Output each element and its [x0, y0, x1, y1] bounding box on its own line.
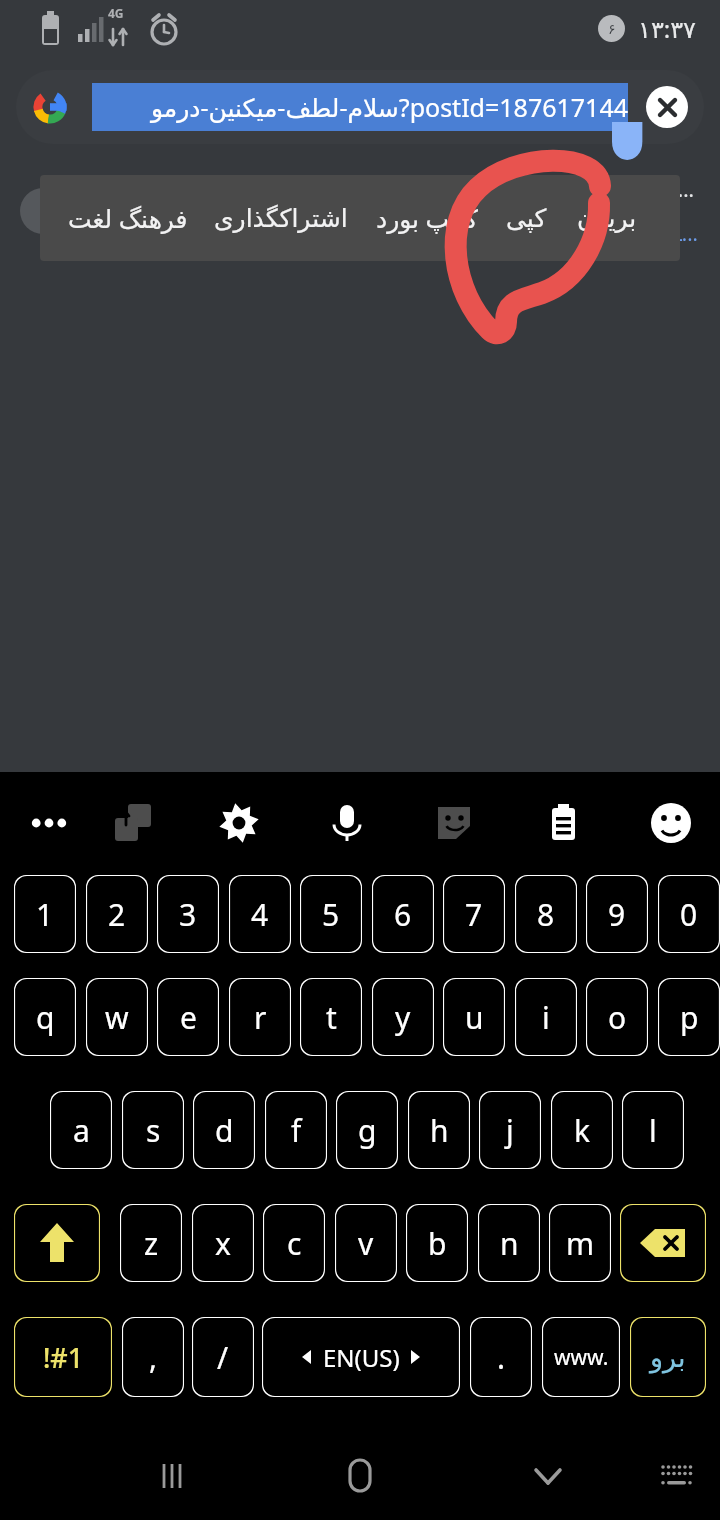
- staticText: n: [500, 1223, 519, 1264]
- button[interactable]: بریدن: [577, 175, 637, 261]
- button[interactable]: 7: [443, 875, 505, 953]
- staticText: .: [497, 1337, 506, 1378]
- staticText: www.: [554, 1343, 609, 1372]
- staticText: h: [430, 1110, 449, 1151]
- button[interactable]: t: [300, 978, 362, 1056]
- button[interactable]: 9: [586, 875, 648, 953]
- button[interactable]: Backspace: [620, 1204, 706, 1282]
- button[interactable]: 4: [229, 875, 291, 953]
- button[interactable]: Hide keyboard: [518, 1446, 578, 1506]
- staticText: ۶: [608, 21, 616, 37]
- staticText: y: [395, 997, 411, 1038]
- staticText: z: [144, 1223, 159, 1264]
- button[interactable]: Emoji: [640, 792, 702, 854]
- staticText: ,: [149, 1337, 158, 1378]
- staticText: 5: [322, 894, 340, 935]
- staticText: ـ...: [676, 220, 698, 247]
- button[interactable]: i: [515, 978, 577, 1056]
- staticText: p: [680, 997, 699, 1038]
- staticText: v: [358, 1223, 374, 1264]
- button[interactable]: کلیپ بورد: [376, 175, 478, 261]
- staticText: d: [215, 1110, 234, 1151]
- button[interactable]: Space EN(US): [262, 1317, 460, 1397]
- button[interactable]: ,: [122, 1317, 184, 1397]
- staticText: کلیپ بورد: [376, 201, 478, 235]
- button[interactable]: u: [443, 978, 505, 1056]
- staticText: /: [217, 1337, 229, 1378]
- button[interactable]: 3: [157, 875, 219, 953]
- button[interactable]: k: [551, 1091, 613, 1169]
- button[interactable]: !#1: [14, 1317, 112, 1397]
- button[interactable]: Settings: [208, 792, 270, 854]
- staticText: EN(US): [323, 1341, 400, 1374]
- staticText: برو: [650, 1342, 686, 1373]
- staticText: 4G: [108, 5, 124, 21]
- button[interactable]: a: [50, 1091, 112, 1169]
- button[interactable]: o: [586, 978, 648, 1056]
- staticText: m: [566, 1223, 595, 1264]
- staticText: 1: [36, 894, 54, 935]
- staticText: t: [326, 997, 337, 1038]
- button[interactable]: e: [157, 978, 219, 1056]
- button[interactable]: y: [372, 978, 434, 1056]
- button[interactable]: 8: [515, 875, 577, 953]
- button[interactable]: Stickers: [424, 792, 486, 854]
- button[interactable]: www.: [542, 1317, 620, 1397]
- button[interactable]: 5: [300, 875, 362, 953]
- button[interactable]: c: [263, 1204, 325, 1282]
- staticText: i: [542, 997, 550, 1038]
- button[interactable]: 6: [372, 875, 434, 953]
- staticText: f: [291, 1110, 302, 1151]
- staticText: x: [215, 1223, 231, 1264]
- button[interactable]: 2: [86, 875, 148, 953]
- button[interactable]: /: [192, 1317, 254, 1397]
- staticText: c: [287, 1223, 302, 1264]
- button[interactable]: p: [658, 978, 720, 1056]
- button[interactable]: j: [479, 1091, 541, 1169]
- button[interactable]: .: [470, 1317, 532, 1397]
- button[interactable]: 1: [14, 875, 76, 953]
- button[interactable]: Shift: [14, 1204, 100, 1282]
- button[interactable]: v: [335, 1204, 397, 1282]
- button[interactable]: l: [622, 1091, 684, 1169]
- button[interactable]: More options: [18, 792, 80, 854]
- staticText: بریدن: [577, 204, 637, 233]
- button[interactable]: r: [229, 978, 291, 1056]
- button[interactable]: s: [122, 1091, 184, 1169]
- staticText: کپی: [506, 204, 547, 233]
- button[interactable]: 0: [658, 875, 720, 953]
- button[interactable]: g: [336, 1091, 398, 1169]
- button[interactable]: d: [193, 1091, 255, 1169]
- button[interactable]: b: [406, 1204, 468, 1282]
- staticText: 0: [680, 894, 698, 935]
- button[interactable]: f: [265, 1091, 327, 1169]
- staticText: 7: [465, 894, 483, 935]
- staticText: 8: [537, 894, 555, 935]
- button[interactable]: n: [478, 1204, 540, 1282]
- button[interactable]: اشتراکگذاری: [214, 175, 348, 261]
- button[interactable]: q: [14, 978, 76, 1056]
- staticText: g: [358, 1110, 377, 1151]
- staticText: u: [465, 997, 484, 1038]
- button[interactable]: Voice input: [316, 792, 378, 854]
- button[interactable]: فرهنگ لغت: [68, 175, 188, 261]
- button[interactable]: m: [549, 1204, 611, 1282]
- button[interactable]: Clipboard: [532, 792, 594, 854]
- button[interactable]: Clear: [646, 86, 688, 128]
- button[interactable]: Home: [330, 1446, 390, 1506]
- button[interactable]: Recents: [142, 1446, 202, 1506]
- staticText: o: [608, 997, 627, 1038]
- button[interactable]: w: [86, 978, 148, 1056]
- button[interactable]: h: [408, 1091, 470, 1169]
- staticText: 9: [608, 894, 626, 935]
- button[interactable]: کپی: [506, 175, 547, 261]
- button[interactable]: z: [120, 1204, 182, 1282]
- button[interactable]: سلام-لطف-میکنین-درمو?postId=187617144: [16, 70, 704, 144]
- button[interactable]: Switch keyboard: [648, 1446, 706, 1504]
- staticText: e: [180, 997, 197, 1038]
- staticText: 6: [394, 894, 412, 935]
- button[interactable]: Translate: [102, 792, 164, 854]
- button[interactable]: برو: [630, 1317, 706, 1397]
- button[interactable]: x: [192, 1204, 254, 1282]
- staticText: 2: [108, 894, 126, 935]
